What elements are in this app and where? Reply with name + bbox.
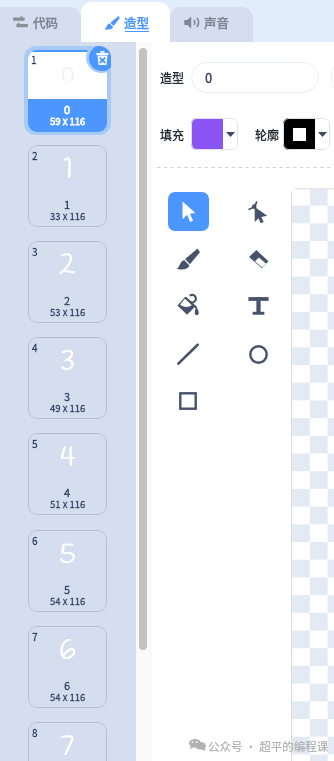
button[interactable]: 声音 (170, 7, 253, 42)
button[interactable]: 0 (24, 46, 111, 135)
button[interactable]: 5 (28, 433, 107, 515)
staticText: 声音 (204, 13, 230, 31)
staticText: 5 (64, 581, 71, 595)
staticText: 49 x 116 (50, 401, 86, 414)
staticText: 1 (63, 151, 73, 182)
staticText: 54 x 116 (50, 594, 86, 607)
staticText: 6 (59, 632, 76, 663)
button[interactable]: Fill colour (191, 118, 238, 150)
button[interactable]: 7 (28, 626, 107, 708)
staticText: 4 (60, 439, 76, 470)
staticText: 造型 (124, 13, 150, 31)
staticText: 填充 (160, 126, 185, 143)
staticText: 2 (32, 148, 38, 162)
button[interactable]: Fill (168, 285, 208, 325)
button[interactable]: Reshape (238, 191, 278, 231)
staticText: 59 x 116 (50, 114, 86, 127)
button[interactable]: Select tool (168, 192, 209, 231)
staticText: 7 (32, 629, 38, 643)
button[interactable]: 4 (28, 337, 107, 419)
staticText: 51 x 116 (50, 497, 86, 510)
staticText: 造型 (160, 69, 185, 86)
staticText: 5 (32, 436, 38, 450)
button[interactable]: Delete costume (89, 46, 111, 71)
staticText: 公众号 · 超平的编程课 (208, 738, 329, 752)
staticText: 2 (59, 247, 76, 278)
staticText: 5 (59, 536, 76, 567)
button[interactable]: Eraser (238, 239, 278, 279)
staticText: 3 (64, 388, 71, 402)
staticText: 4 (64, 484, 71, 498)
staticText: 2 (64, 292, 71, 306)
staticText: 1 (64, 196, 71, 210)
button[interactable]: Rectangle (168, 381, 208, 421)
button[interactable]: Brush (168, 239, 208, 279)
staticText: 0 (61, 63, 75, 81)
button[interactable]: 2 (28, 145, 107, 227)
button[interactable]: Select (168, 191, 208, 231)
button[interactable]: 8 (28, 722, 107, 761)
staticText: 7 (60, 728, 75, 759)
staticText: 4 (32, 340, 38, 354)
button[interactable]: Text (238, 285, 278, 325)
button[interactable]: 6 (28, 530, 107, 612)
button[interactable]: Line (168, 334, 208, 374)
button[interactable]: 代码 (0, 7, 81, 42)
staticText: 0 (205, 68, 213, 87)
staticText: 54 x 116 (50, 690, 86, 703)
staticText: 53 x 116 (50, 305, 86, 318)
staticText: 代码 (33, 13, 59, 31)
button[interactable]: Outline colour (283, 118, 330, 150)
button[interactable]: 造型 (81, 2, 170, 42)
staticText: 8 (32, 725, 38, 739)
staticText: 6 (64, 677, 71, 691)
staticText: 0 (64, 101, 71, 115)
staticText: 轮廓 (255, 126, 280, 143)
staticText: 1 (31, 52, 37, 66)
staticText: 6 (32, 533, 38, 547)
staticText: 3 (60, 343, 76, 374)
staticText: 3 (32, 244, 38, 258)
button[interactable]: 3 (28, 241, 107, 323)
button[interactable]: Circle (238, 334, 278, 374)
button[interactable]: 0 (191, 62, 319, 93)
staticText: 33 x 116 (50, 209, 86, 222)
